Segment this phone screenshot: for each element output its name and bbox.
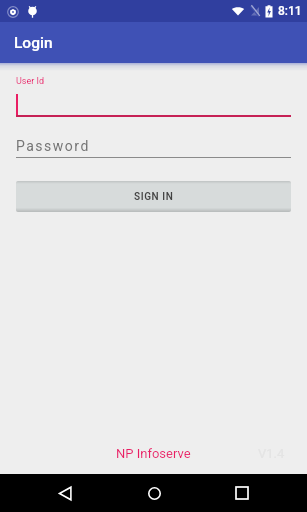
staticText: User Id (16, 76, 45, 87)
staticText: Password (16, 138, 90, 154)
staticText: 8:11 (278, 4, 302, 18)
button[interactable]: Recent apps (218, 474, 266, 512)
button[interactable]: SIGN IN (16, 181, 291, 212)
staticText: V1.4 (258, 446, 285, 461)
button[interactable]: Back (41, 474, 89, 512)
staticText: Login (14, 34, 53, 52)
button[interactable]: User Id input field (16, 76, 291, 117)
staticText: SIGN IN (134, 191, 174, 203)
button[interactable]: Home (130, 474, 178, 512)
staticText: NP Infoserve (116, 446, 191, 461)
button[interactable]: Password input field (16, 138, 291, 158)
